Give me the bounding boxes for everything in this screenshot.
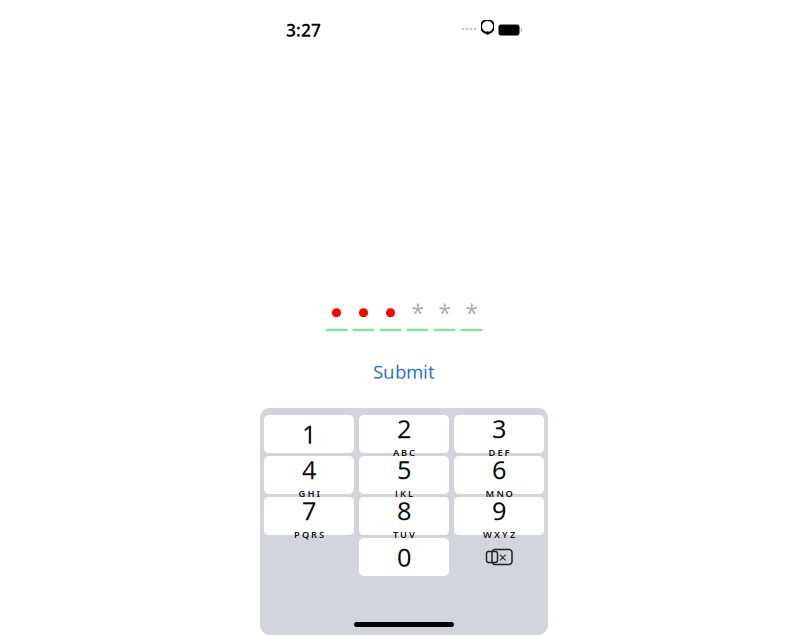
staticText: 1 — [302, 417, 316, 451]
button[interactable]: 0 — [359, 538, 449, 576]
staticText: Submit — [373, 359, 435, 384]
button[interactable]: 3 — [454, 415, 544, 453]
button[interactable]: 5 — [359, 456, 449, 494]
staticText: W X Y Z — [483, 528, 515, 540]
staticText: J K L — [395, 487, 413, 499]
staticText: T U V — [393, 528, 415, 540]
staticText: 0 — [397, 540, 411, 574]
staticText: * — [465, 298, 477, 328]
staticText: 8 — [397, 493, 411, 527]
staticText: * — [438, 298, 450, 328]
staticText: P Q R S — [294, 528, 324, 540]
staticText: 5 — [397, 452, 411, 486]
staticText: 3:27 — [286, 18, 321, 41]
staticText: 6 — [492, 452, 506, 486]
staticText: 3 — [492, 411, 506, 445]
staticText: 9 — [492, 493, 506, 527]
button[interactable]: 9 — [454, 497, 544, 535]
button[interactable]: 8 — [359, 497, 449, 535]
staticText: 2 — [397, 411, 411, 445]
staticText: G H I — [298, 487, 319, 499]
staticText: × — [498, 547, 506, 567]
button[interactable]: 1 — [264, 415, 354, 453]
staticText: D E F — [488, 446, 509, 458]
staticText: * — [411, 298, 423, 328]
staticText: 7 — [302, 493, 316, 527]
staticText: A B C — [393, 446, 415, 458]
button[interactable]: Submit — [363, 355, 445, 388]
staticText: 4 — [302, 452, 316, 486]
button[interactable]: Delete — [454, 538, 544, 576]
staticText: M N O — [485, 487, 512, 499]
button[interactable]: 2 — [359, 415, 449, 453]
button[interactable]: 7 — [264, 497, 354, 535]
button[interactable]: 4 — [264, 456, 354, 494]
button[interactable]: 6 — [454, 456, 544, 494]
